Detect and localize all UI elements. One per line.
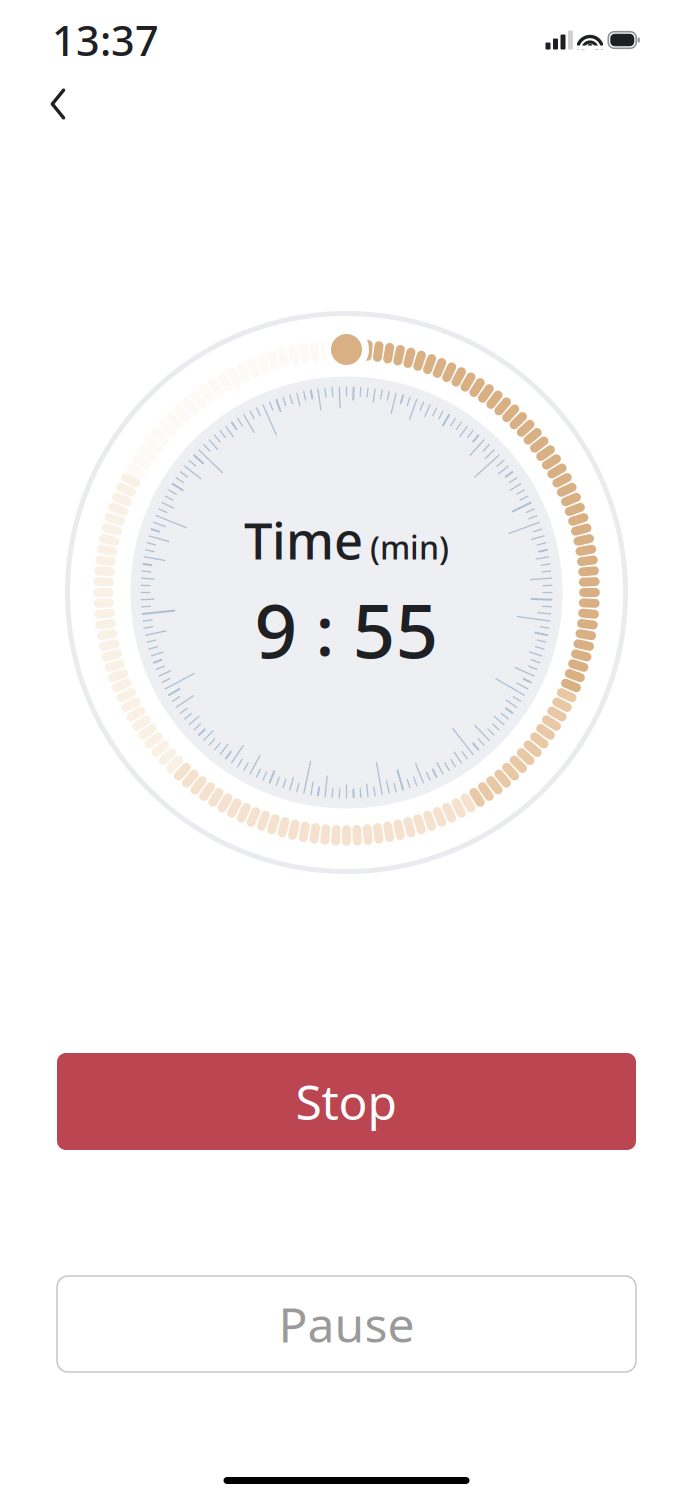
staticText: : [297,583,352,675]
button[interactable]: Stop [57,1053,636,1150]
staticText: 55 [352,580,438,679]
staticText: Time [244,506,363,574]
button[interactable]: Back [30,76,86,132]
staticText: Stop [295,1070,397,1133]
staticText: (min) [370,526,449,568]
staticText: Pause [278,1292,414,1356]
button[interactable]: Pause [57,1276,636,1372]
staticText: 13:37 [52,13,159,67]
staticText: 9 [254,580,297,679]
